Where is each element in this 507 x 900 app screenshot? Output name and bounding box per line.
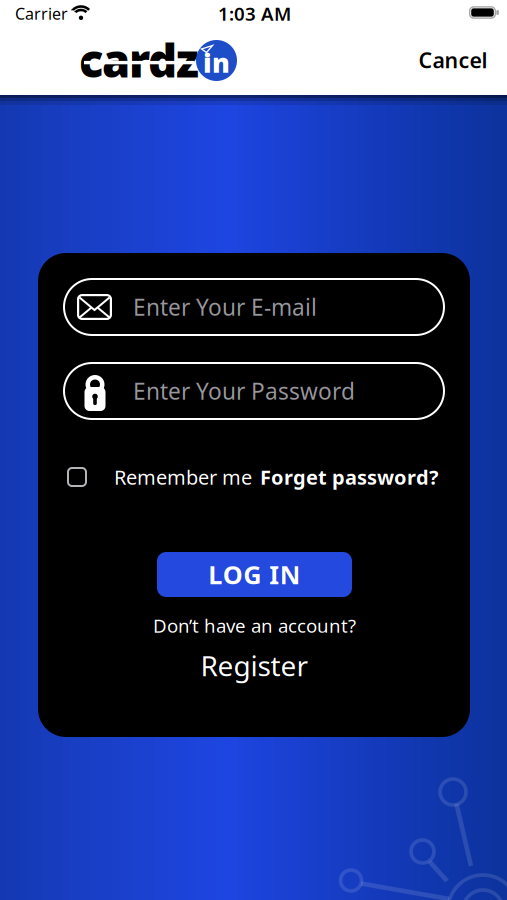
staticText: Remember me [114,464,252,490]
button[interactable]: Remember me [67,462,297,492]
staticText: cardz [79,30,199,90]
button[interactable]: Cancel [418,46,487,74]
staticText: Cancel [418,46,487,74]
button[interactable]: Register [200,647,308,684]
staticText: in [203,45,230,80]
staticText: LOG IN [208,558,301,591]
staticText: Register [200,647,308,684]
button[interactable]: LOG IN [157,552,352,597]
staticText: Enter Your Password [133,376,355,406]
staticText: 1:03 AM [218,1,291,26]
staticText: Carrier [15,3,68,24]
button[interactable]: Enter Your Password [63,362,445,420]
staticText: Enter Your E-mail [133,292,317,322]
staticText: Don’t have an account? [153,613,356,638]
staticText: Forget password? [260,464,439,490]
button[interactable]: Enter Your E-mail [63,278,445,336]
button[interactable]: Forget password? [229,464,439,490]
